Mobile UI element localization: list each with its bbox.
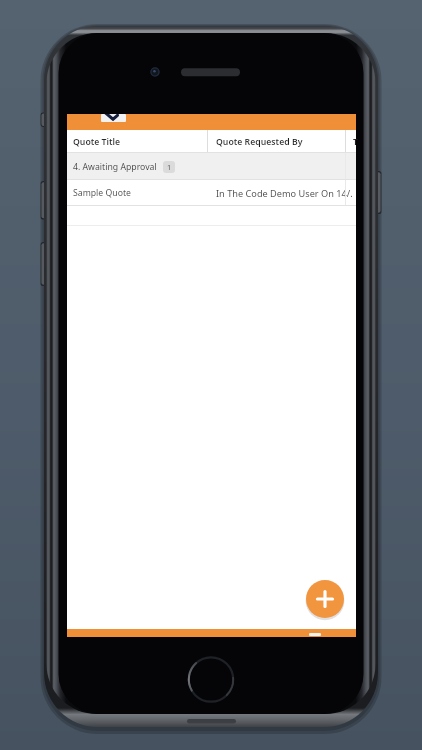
staticText: T (353, 136, 358, 148)
staticText: 4. Awaiting Approval (73, 161, 157, 173)
button[interactable]: 4. Awaiting Approval (67, 153, 356, 180)
button[interactable]: Sample Quote (67, 180, 356, 206)
button[interactable] (67, 629, 356, 637)
staticText: 1 (167, 162, 172, 172)
staticText: Quote Requested By (216, 136, 303, 148)
button[interactable] (101, 114, 126, 122)
button[interactable]: Quote Title (67, 130, 356, 153)
staticText: Quote Title (73, 136, 121, 148)
staticText: Sample Quote (73, 187, 131, 199)
staticText: In The Code Demo User On 14/... (216, 187, 353, 200)
button[interactable] (306, 580, 344, 618)
